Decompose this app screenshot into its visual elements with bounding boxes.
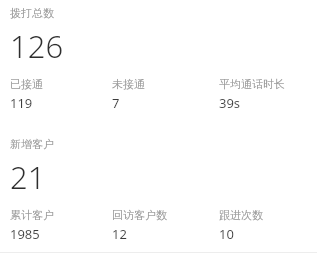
staticText: 12	[112, 225, 127, 243]
button[interactable]: 新增客户	[0, 137, 317, 243]
staticText: 10	[219, 225, 234, 243]
staticText: 21	[10, 156, 46, 198]
button[interactable]: 回访客户数	[112, 208, 219, 243]
staticText: 7	[112, 94, 120, 112]
button[interactable]: 拨打总数	[0, 6, 317, 112]
staticText: 新增客户	[10, 137, 54, 151]
staticText: 回访客户数	[112, 208, 167, 222]
button[interactable]: 累计客户	[10, 208, 112, 243]
staticText: 1985	[10, 225, 40, 243]
button[interactable]: 平均通话时长	[219, 77, 309, 112]
staticText: 累计客户	[10, 208, 54, 222]
staticText: 已接通	[10, 77, 43, 91]
staticText: 未接通	[112, 77, 145, 91]
staticText: 119	[10, 94, 33, 112]
staticText: 拨打总数	[10, 6, 54, 20]
button[interactable]: 跟进次数	[219, 208, 309, 243]
button[interactable]: 已接通	[10, 77, 112, 112]
staticText: 126	[10, 25, 64, 67]
staticText: 39s	[219, 94, 241, 112]
staticText: 跟进次数	[219, 208, 263, 222]
button[interactable]: 未接通	[112, 77, 219, 112]
staticText: 平均通话时长	[219, 77, 285, 91]
